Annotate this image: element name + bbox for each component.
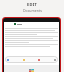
- staticText: Documents: [23, 8, 42, 13]
- staticText: EDIT: [27, 2, 38, 7]
